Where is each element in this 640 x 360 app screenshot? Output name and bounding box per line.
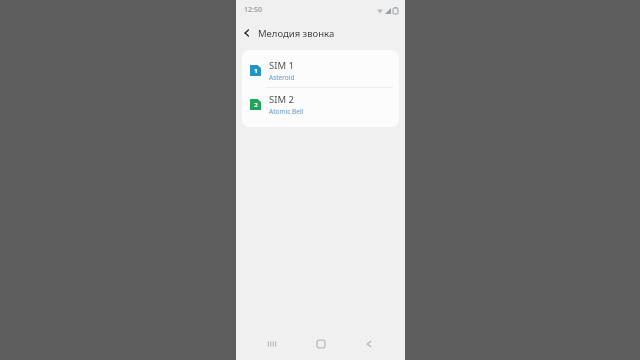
staticText: 2 [254,101,258,109]
button[interactable]: Home [308,331,334,357]
staticText: SIM 2 [269,93,294,106]
staticText: SIM 1 [269,59,294,72]
staticText: Мелодия звонка [258,27,335,40]
staticText: Atomic Bell [269,107,304,116]
button[interactable]: Back [236,22,258,44]
button[interactable]: Back [356,331,382,357]
button[interactable]: Recents [259,331,285,357]
button[interactable]: 2 [242,88,399,121]
staticText: 1 [254,67,258,75]
staticText: Asteroid [269,73,295,82]
staticText: 12:50 [244,5,262,15]
button[interactable]: 1 [242,54,399,87]
